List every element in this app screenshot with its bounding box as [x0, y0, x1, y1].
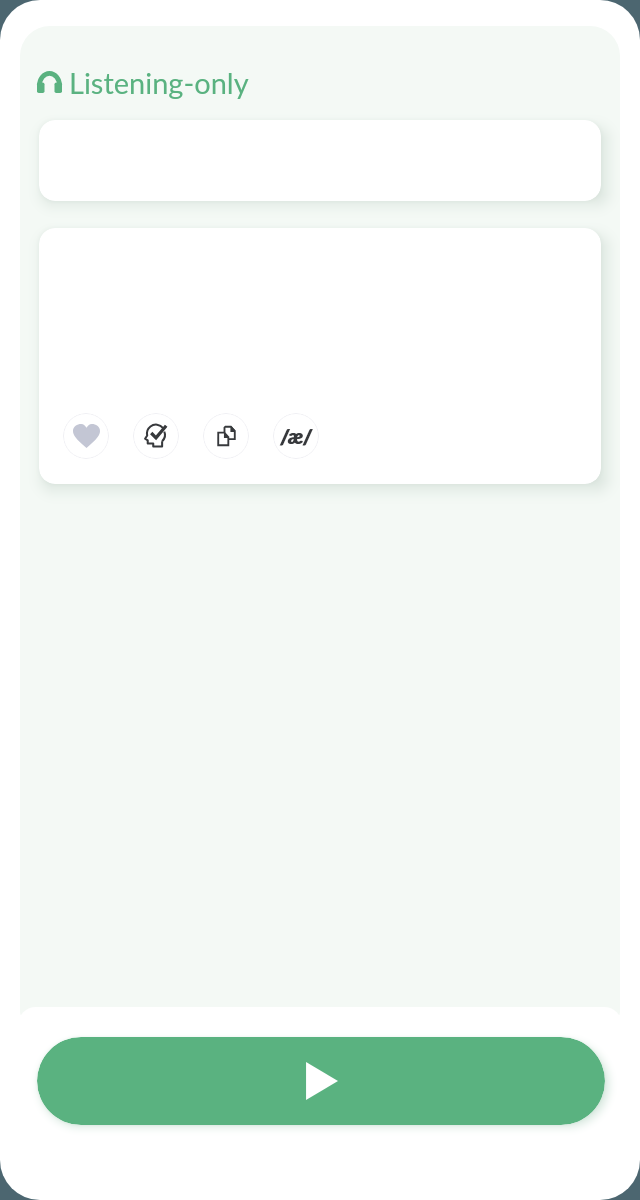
staticText: /æ/: [280, 424, 312, 448]
button[interactable]: Favourite: [63, 413, 109, 459]
button[interactable]: Phonetics: [273, 413, 319, 459]
staticText: /æ/: [281, 424, 313, 448]
staticText: Listening-only: [69, 65, 249, 100]
button[interactable]: Copy: [203, 413, 249, 459]
button[interactable]: Play: [37, 1037, 605, 1125]
button[interactable]: Analyse pronunciation: [133, 413, 179, 459]
